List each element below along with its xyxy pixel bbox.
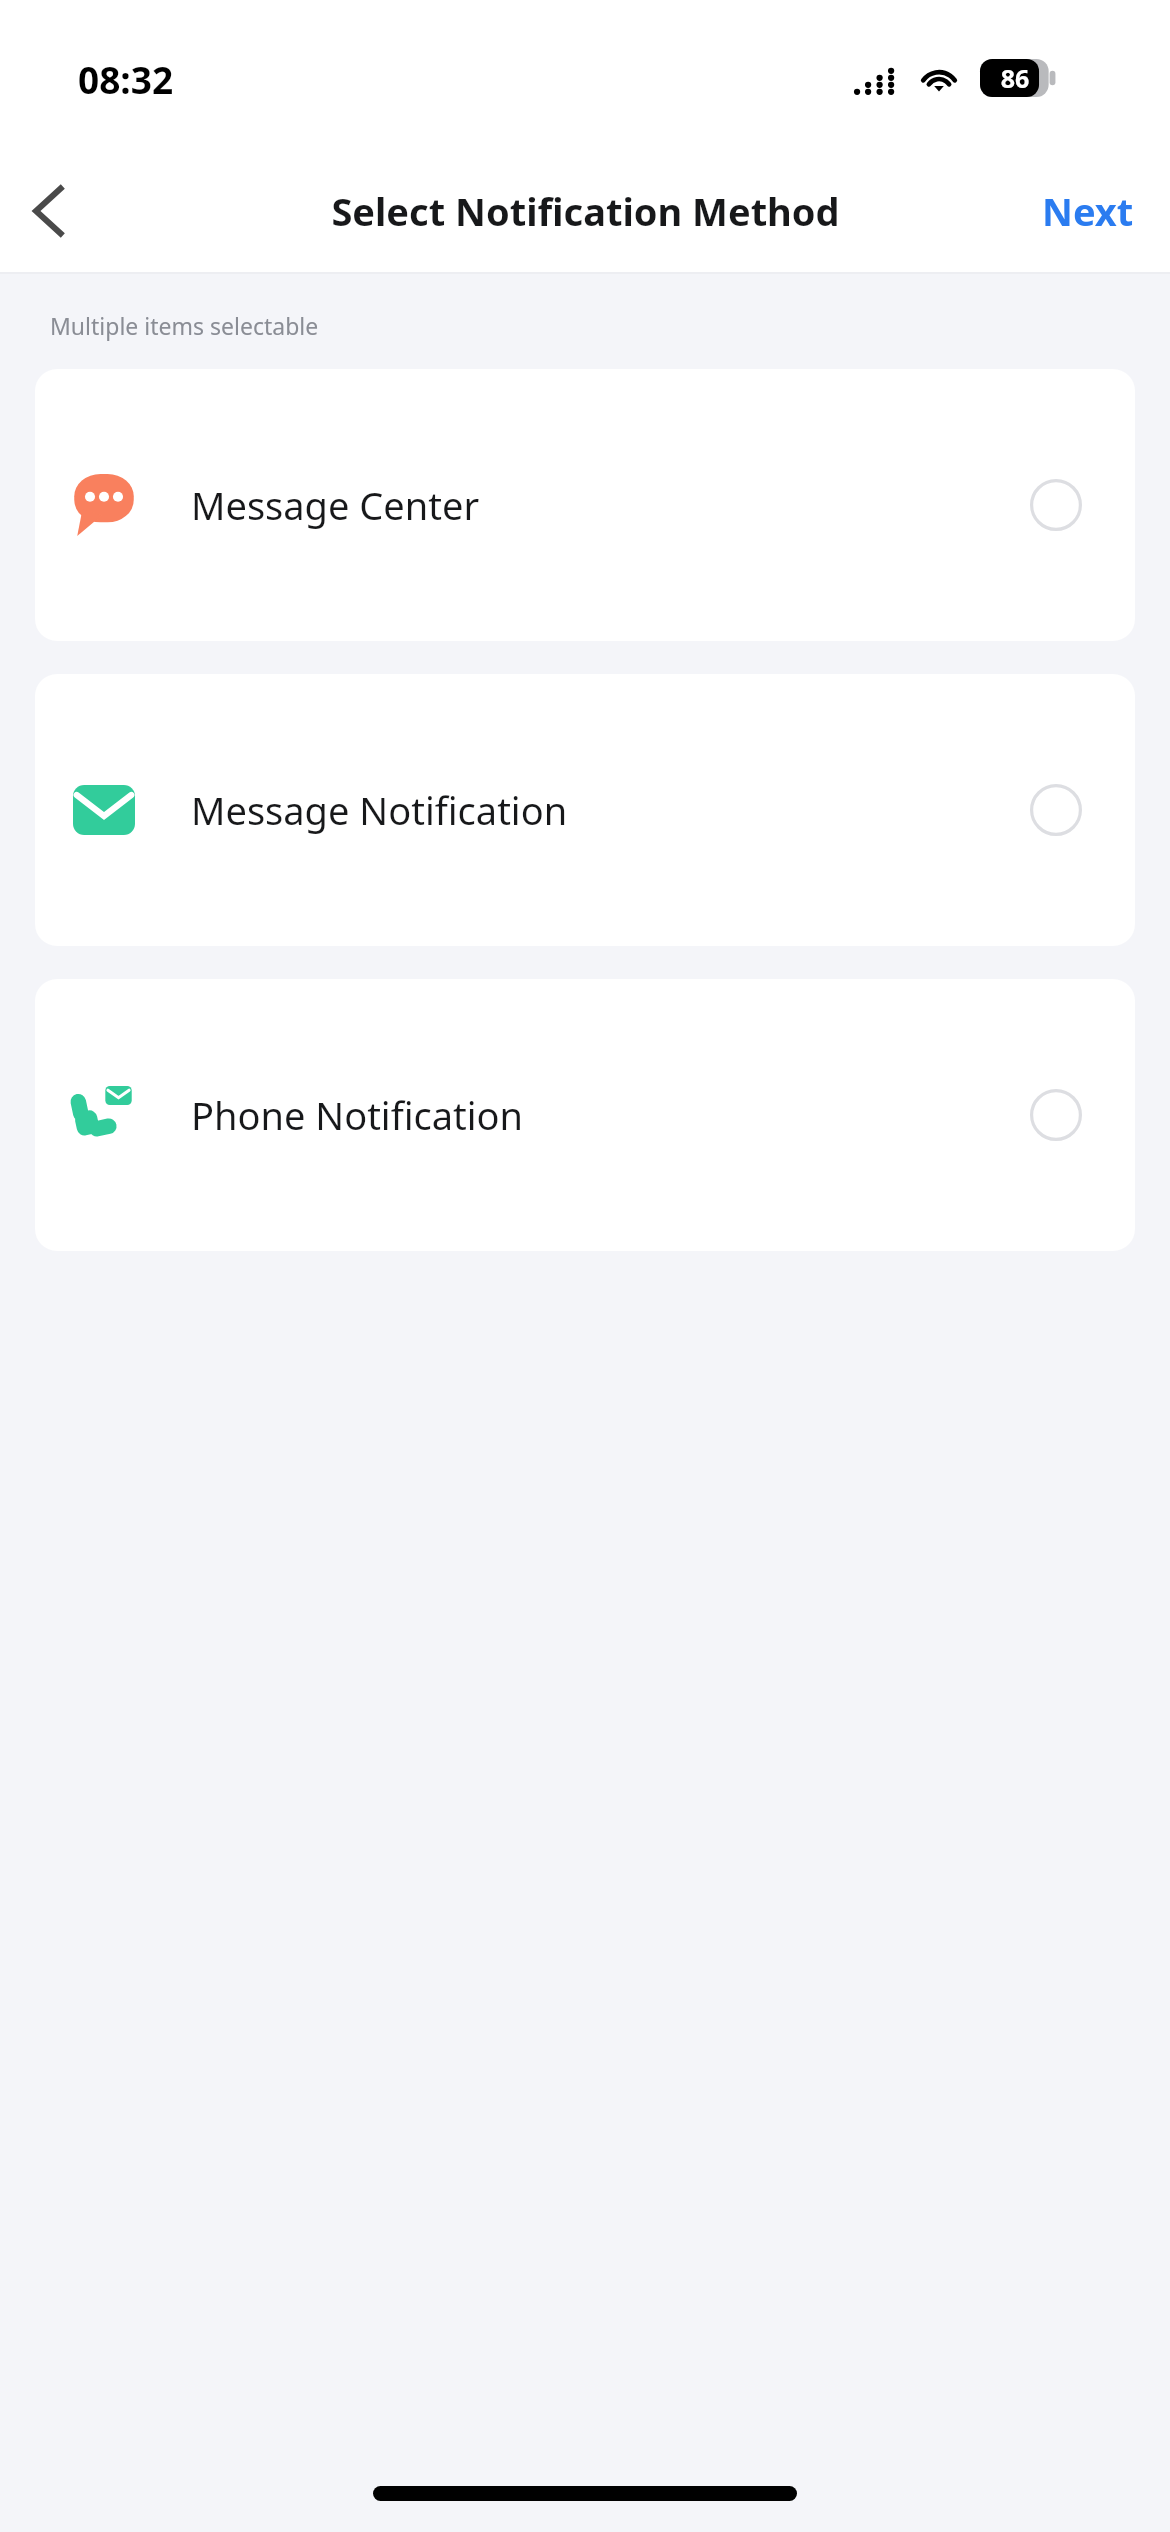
staticText: 08:32 (78, 54, 174, 104)
staticText: 86 (982, 61, 1048, 95)
button[interactable]: Message Notification (35, 674, 1135, 946)
staticText: Multiple items selectable (50, 310, 319, 341)
staticText: Next (1042, 185, 1134, 237)
staticText: Phone Notification (191, 1089, 524, 1141)
staticText: Select Notification Method (331, 185, 840, 237)
button[interactable]: Next (1026, 171, 1150, 251)
staticText: Message Center (191, 479, 480, 531)
button[interactable]: Back (0, 163, 96, 259)
button[interactable]: Phone Notification (35, 979, 1135, 1251)
button[interactable]: Message Center (35, 369, 1135, 641)
staticText: Message Notification (191, 784, 568, 836)
